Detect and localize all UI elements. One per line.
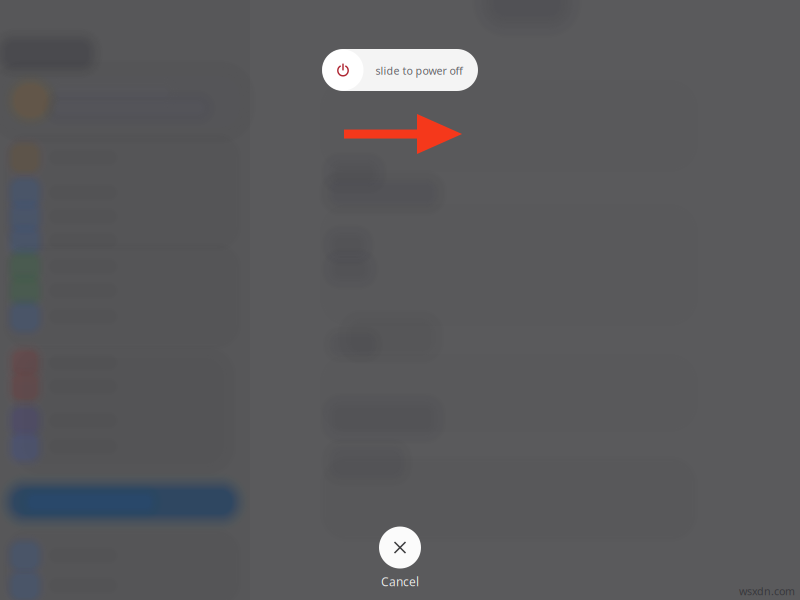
staticText: Cancel	[381, 573, 419, 589]
staticText: wsxdn.com	[739, 584, 795, 598]
button[interactable]: Cancel	[350, 526, 450, 589]
button[interactable]: slide to power off	[322, 49, 478, 91]
staticText: slide to power off	[375, 63, 462, 78]
